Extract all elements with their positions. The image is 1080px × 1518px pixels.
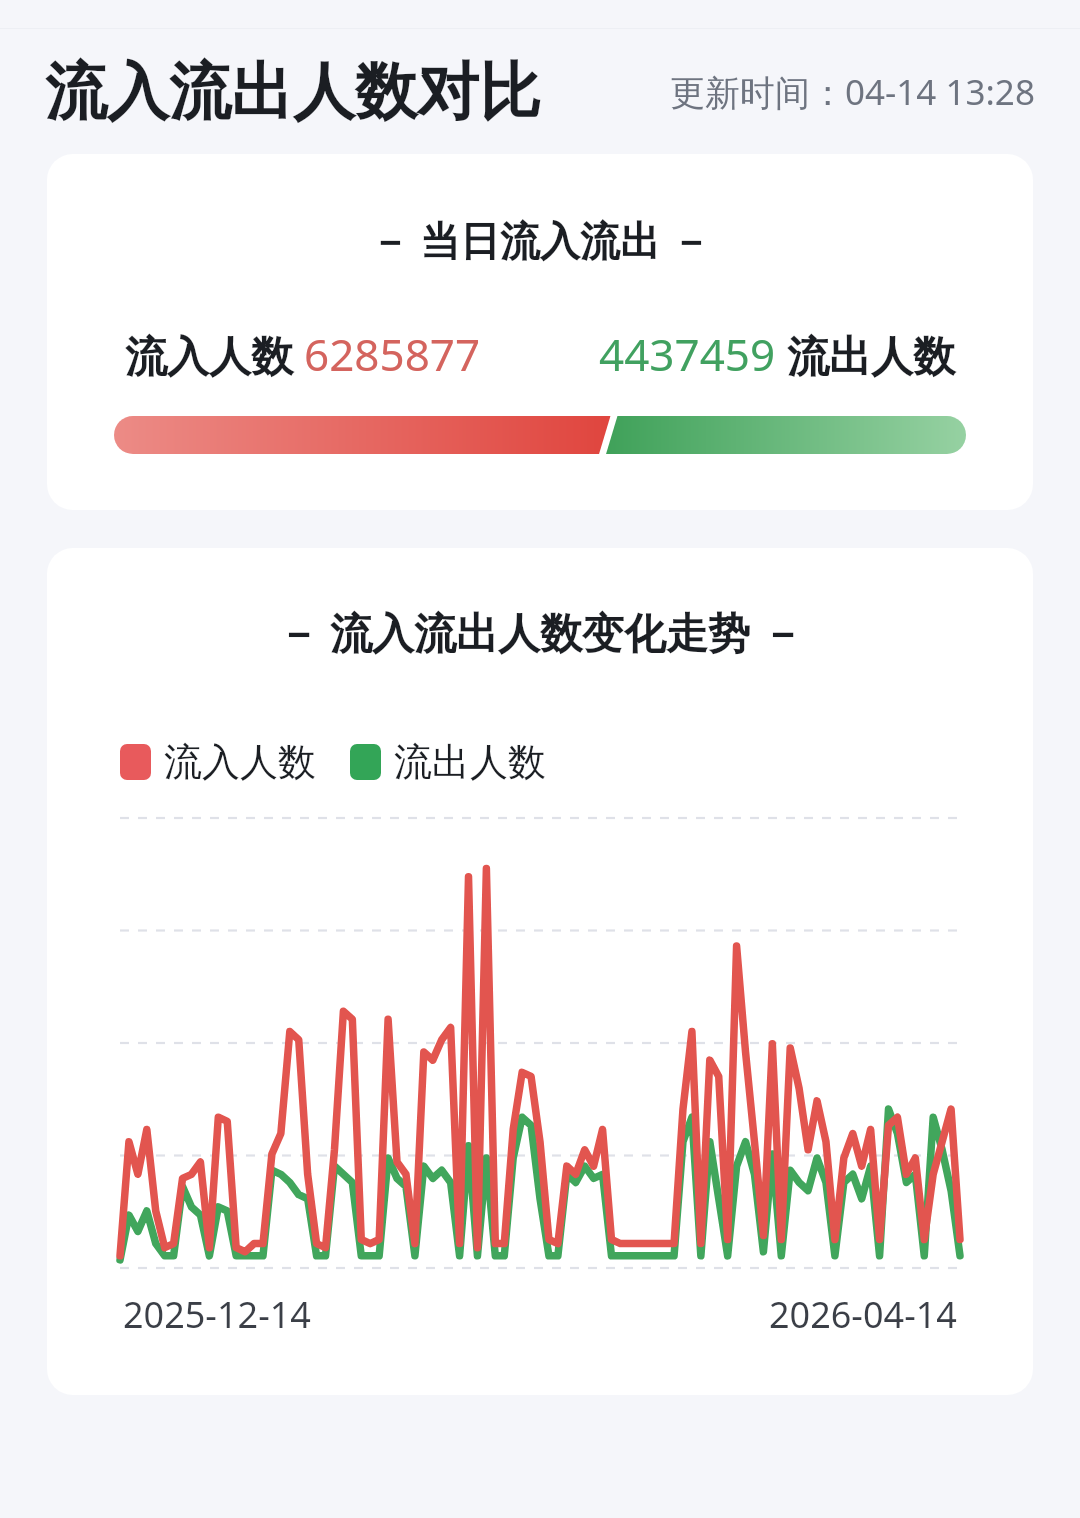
- staticText: － 流入流出人数变化走势 －: [47, 603, 1033, 660]
- staticText: 6285877: [304, 324, 481, 384]
- staticText: － 当日流入流出 －: [47, 212, 1033, 267]
- staticText: 流出人数: [776, 326, 955, 383]
- button[interactable]: 流入人数: [120, 738, 546, 786]
- staticText: 2026-04-14: [769, 1290, 957, 1339]
- staticText: 4437459: [599, 324, 776, 384]
- button[interactable]: － 当日流入流出 －: [47, 154, 1033, 510]
- staticText: 流入人数: [125, 326, 304, 383]
- other: 流入流出人数变化走势图: [120, 818, 960, 1268]
- staticText: 流入人数: [164, 738, 316, 786]
- staticText: 流入流出人数对比: [45, 53, 541, 131]
- button[interactable]: － 流入流出人数变化走势 －: [47, 548, 1033, 1395]
- button[interactable]: 流入流出占比: [114, 416, 966, 454]
- staticText: 更新时间：04-14 13:28: [670, 68, 1035, 116]
- staticText: 2025-12-14: [123, 1290, 311, 1339]
- staticText: 流出人数: [394, 738, 546, 786]
